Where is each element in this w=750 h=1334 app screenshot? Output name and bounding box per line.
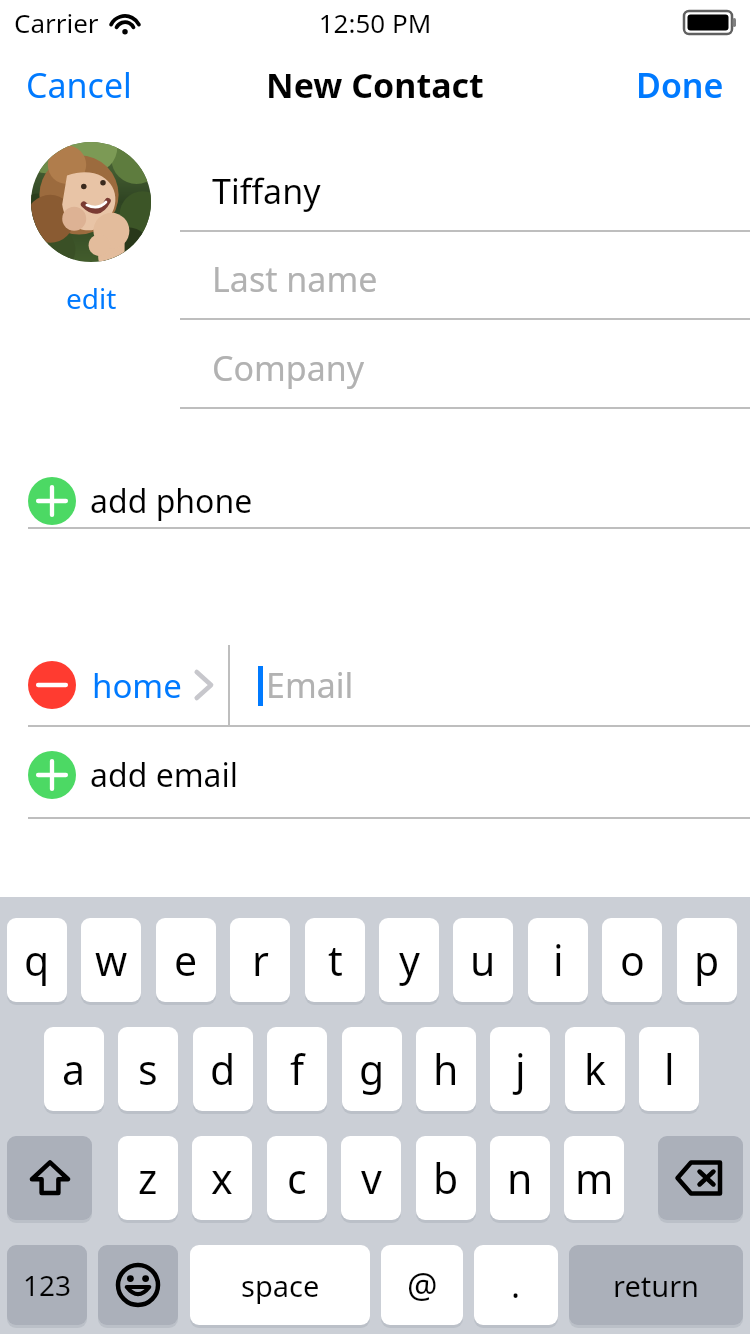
staticText: m — [575, 1150, 614, 1206]
button[interactable]: Shift — [7, 1136, 92, 1220]
button[interactable]: t — [305, 918, 365, 1002]
staticText: Company — [212, 345, 365, 391]
staticText: j — [515, 1041, 526, 1097]
button[interactable]: Emoji — [98, 1245, 178, 1325]
staticText: z — [138, 1150, 158, 1206]
staticText: @ — [407, 1262, 438, 1308]
staticText: add phone — [90, 479, 253, 523]
button[interactable]: p — [677, 918, 737, 1002]
staticText: v — [361, 1150, 382, 1206]
staticText: Carrier — [14, 5, 99, 40]
button[interactable]: d — [193, 1027, 253, 1111]
button[interactable]: Company — [180, 329, 750, 407]
button[interactable]: q — [7, 918, 67, 1002]
button[interactable]: . — [474, 1245, 558, 1325]
button[interactable]: l — [639, 1027, 699, 1111]
button[interactable]: space — [190, 1245, 370, 1325]
staticText: x — [211, 1150, 233, 1206]
button[interactable]: k — [565, 1027, 625, 1111]
staticText: r — [252, 932, 269, 988]
staticText: w — [95, 932, 128, 988]
button[interactable]: g — [342, 1027, 402, 1111]
button[interactable]: y — [379, 918, 439, 1002]
staticText: q — [24, 932, 50, 988]
button[interactable]: home — [88, 645, 218, 725]
staticText: k — [584, 1041, 606, 1097]
button[interactable]: r — [230, 918, 290, 1002]
staticText: a — [62, 1041, 86, 1097]
button[interactable]: return — [569, 1245, 743, 1325]
staticText: return — [613, 1266, 700, 1305]
button[interactable]: Last name — [180, 240, 750, 318]
staticText: Email — [266, 662, 354, 708]
button[interactable]: add email — [0, 740, 750, 810]
staticText: t — [328, 932, 343, 988]
staticText: c — [287, 1150, 307, 1206]
button[interactable]: w — [81, 918, 141, 1002]
staticText: e — [174, 932, 198, 988]
staticText: home — [92, 663, 182, 708]
button[interactable]: a — [44, 1027, 104, 1111]
button[interactable]: i — [528, 918, 588, 1002]
staticText: p — [694, 932, 720, 988]
staticText: 123 — [23, 1266, 72, 1304]
button[interactable]: n — [490, 1136, 550, 1220]
button[interactable]: v — [341, 1136, 401, 1220]
staticText: space — [241, 1266, 320, 1305]
staticText: add email — [90, 753, 239, 797]
staticText: s — [138, 1041, 158, 1097]
button[interactable]: add phone — [0, 466, 750, 536]
staticText: b — [433, 1150, 459, 1206]
staticText: . — [511, 1262, 521, 1308]
button[interactable]: o — [602, 918, 662, 1002]
button[interactable]: z — [118, 1136, 178, 1220]
staticText: Cancel — [26, 62, 132, 108]
button[interactable]: h — [416, 1027, 476, 1111]
button[interactable]: u — [453, 918, 513, 1002]
staticText: New Contact — [266, 62, 484, 108]
button[interactable]: e — [156, 918, 216, 1002]
button[interactable]: @ — [381, 1245, 463, 1325]
button[interactable]: Done — [630, 54, 730, 116]
staticText: d — [210, 1041, 236, 1097]
button[interactable]: x — [192, 1136, 252, 1220]
staticText: l — [664, 1041, 675, 1097]
staticText: y — [399, 932, 420, 988]
staticText: g — [359, 1041, 385, 1097]
button[interactable]: Remove email — [28, 661, 76, 709]
button[interactable]: Contact photo — [31, 142, 151, 262]
button[interactable]: Cancel — [20, 54, 138, 116]
button[interactable]: edit — [31, 276, 151, 320]
staticText: f — [290, 1041, 305, 1097]
staticText: n — [507, 1150, 533, 1206]
button[interactable]: b — [416, 1136, 476, 1220]
staticText: i — [553, 932, 564, 988]
button[interactable]: Tiffany — [180, 152, 750, 230]
staticText: 12:50 PM — [0, 5, 750, 40]
button[interactable]: j — [490, 1027, 550, 1111]
button[interactable]: f — [267, 1027, 327, 1111]
staticText: Tiffany — [212, 168, 321, 214]
staticText: u — [470, 932, 496, 988]
staticText: h — [433, 1041, 459, 1097]
staticText: o — [620, 932, 645, 988]
button[interactable]: m — [564, 1136, 624, 1220]
button[interactable]: s — [118, 1027, 178, 1111]
staticText: edit — [66, 279, 117, 317]
button[interactable]: 123 — [7, 1245, 87, 1325]
staticText: Done — [636, 62, 724, 108]
staticText: Last name — [212, 256, 378, 302]
button[interactable]: c — [267, 1136, 327, 1220]
button[interactable]: Email — [240, 645, 750, 725]
button[interactable]: Backspace — [658, 1136, 743, 1220]
